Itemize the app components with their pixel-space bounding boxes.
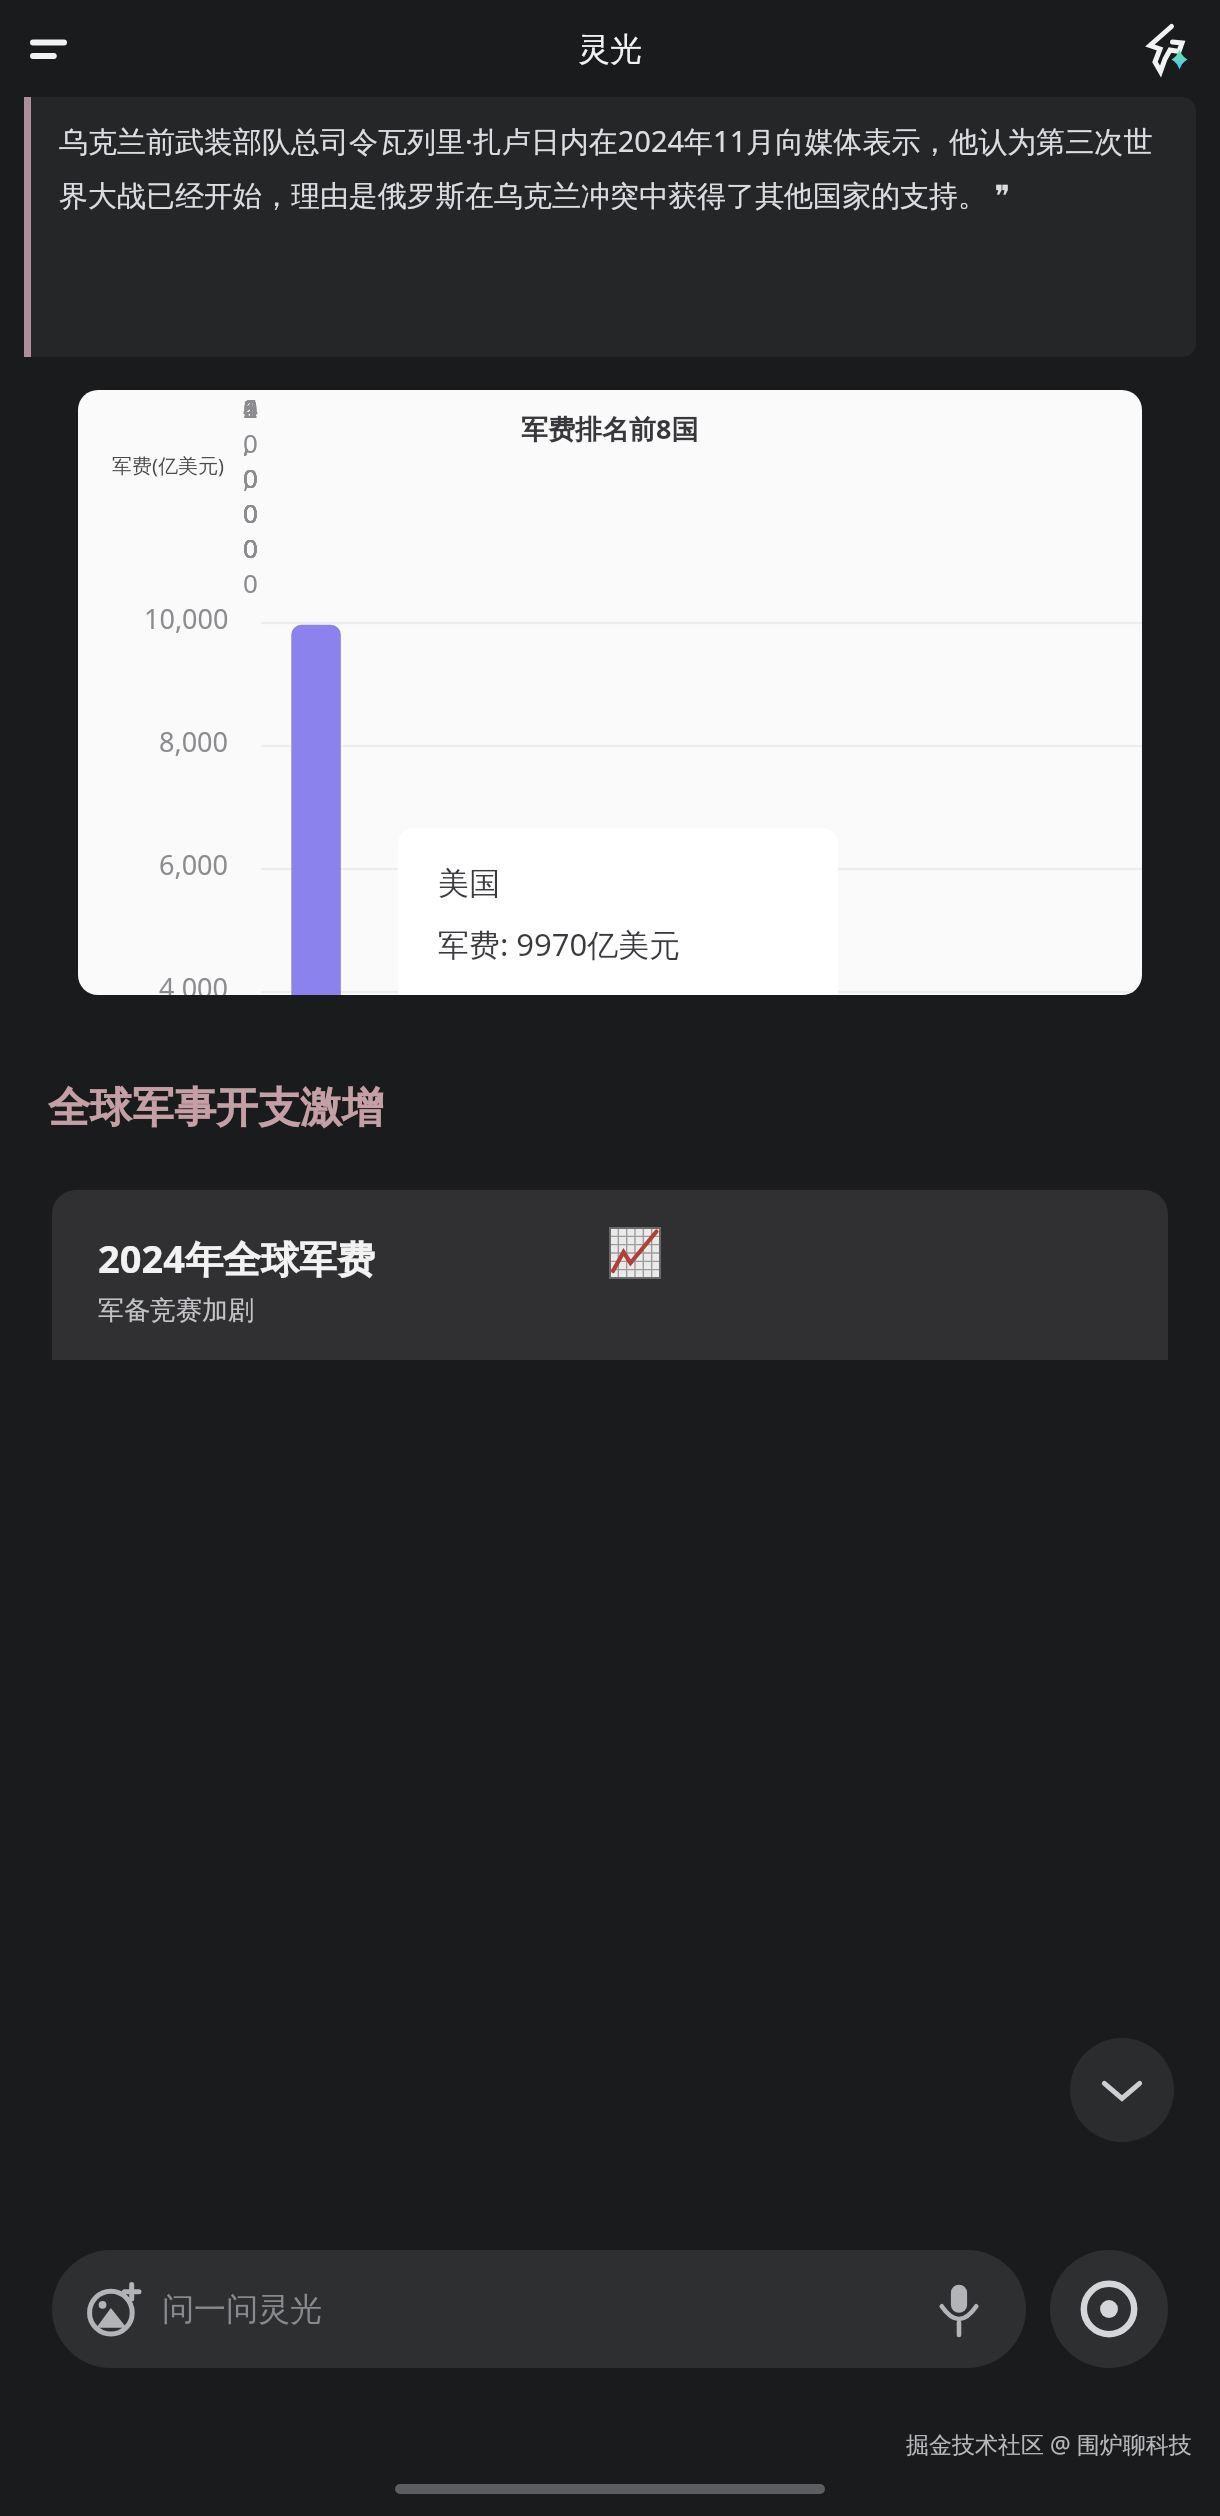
- button[interactable]: 军费排名前8国: [78, 390, 1142, 995]
- button[interactable]: Menu: [18, 19, 78, 79]
- staticText: 掘金技术社区 @ 围炉聊科技: [906, 2428, 1192, 2459]
- staticText: 10,000: [144, 600, 229, 637]
- button[interactable]: 乌克兰前武装部队总司令瓦列里·扎卢日内在2024年11月向媒体表示，他认为第三次…: [24, 97, 1196, 357]
- staticText: 6,000: [159, 846, 229, 883]
- button[interactable]: AI assistant: [1134, 14, 1204, 84]
- button[interactable]: 2024年全球军费: [52, 1190, 1168, 1360]
- button[interactable]: Expand: [1070, 2038, 1174, 2142]
- staticText: 乌克兰前武装部队总司令瓦列里·扎卢日内在2024年11月向媒体表示，他认为第三次…: [59, 121, 1168, 214]
- staticText: 4,000: [159, 969, 229, 995]
- staticText: 军费(亿美元): [112, 452, 224, 479]
- staticText: 军费: 9970亿美元: [438, 923, 681, 965]
- staticText: 2024年全球军费: [98, 1232, 375, 1284]
- staticText: 军费排名前8国: [521, 410, 699, 447]
- staticText: 灵光: [578, 29, 642, 69]
- button[interactable]: Voice input: [932, 2282, 986, 2336]
- button[interactable]: 问一问灵光: [52, 2250, 1026, 2368]
- staticText: 军备竞赛加剧: [98, 1294, 254, 1327]
- staticText: 问一问灵光: [162, 2289, 932, 2329]
- staticText: 全球军事开支激增: [48, 1082, 384, 1135]
- button[interactable]: Vision: [1050, 2250, 1168, 2368]
- staticText: 美国: [438, 864, 500, 903]
- staticText: 8,000: [159, 723, 229, 760]
